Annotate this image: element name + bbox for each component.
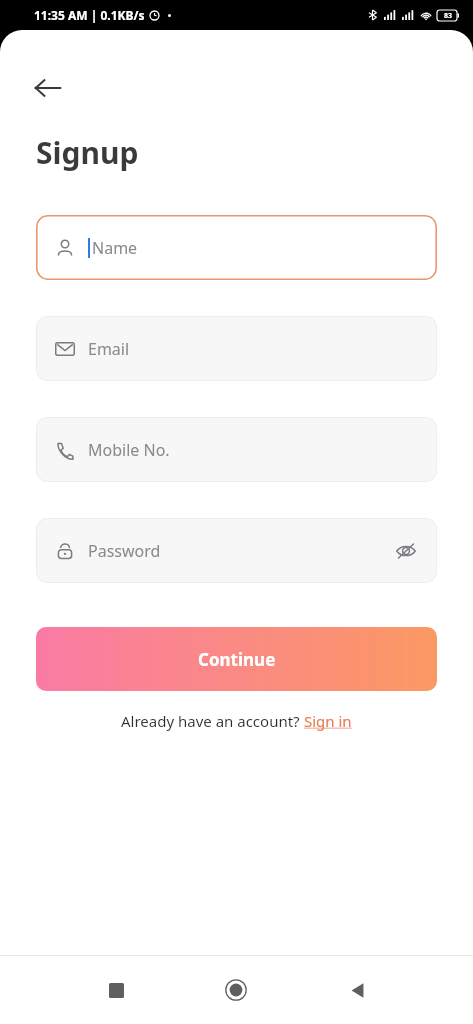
button[interactable]: Email bbox=[36, 316, 437, 381]
button[interactable]: Sign in bbox=[304, 711, 352, 731]
button[interactable]: Back bbox=[24, 64, 72, 112]
staticText: Signup bbox=[36, 132, 139, 173]
button[interactable]: Continue bbox=[36, 627, 437, 691]
staticText: 83 bbox=[444, 11, 453, 21]
staticText: Password bbox=[88, 540, 161, 562]
button[interactable]: Recents bbox=[88, 962, 144, 1018]
button[interactable]: Back bbox=[329, 962, 385, 1018]
staticText: Already have an account? bbox=[121, 711, 304, 731]
staticText: 11:35 AM | 0.1KB/s bbox=[34, 7, 145, 23]
button[interactable]: Mobile No. bbox=[36, 417, 437, 482]
staticText: Sign in bbox=[304, 711, 352, 731]
staticText: Name bbox=[92, 237, 138, 259]
button[interactable]: Password bbox=[36, 518, 437, 583]
staticText: Email bbox=[88, 338, 130, 360]
staticText: Mobile No. bbox=[88, 439, 170, 461]
staticText: Continue bbox=[198, 648, 276, 671]
button[interactable]: Home bbox=[208, 962, 264, 1018]
button[interactable]: Name bbox=[36, 215, 437, 280]
button[interactable]: Show password bbox=[393, 538, 419, 564]
